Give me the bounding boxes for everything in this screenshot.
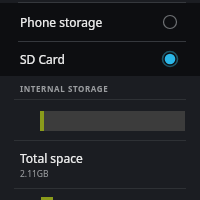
staticText: Total space [20, 150, 83, 166]
button[interactable]: Phone storage [0, 3, 200, 41]
other: Phone storage [162, 14, 178, 30]
button[interactable]: Total space [0, 141, 200, 186]
staticText: Phone storage [20, 14, 162, 30]
other: SD Card selected [162, 51, 178, 67]
button[interactable]: Apps [0, 189, 200, 200]
button[interactable]: SD Card [0, 42, 200, 76]
staticText: SD Card [20, 51, 162, 67]
staticText: INTERNAL STORAGE [20, 83, 109, 94]
staticText: 2.11GB [20, 168, 49, 180]
